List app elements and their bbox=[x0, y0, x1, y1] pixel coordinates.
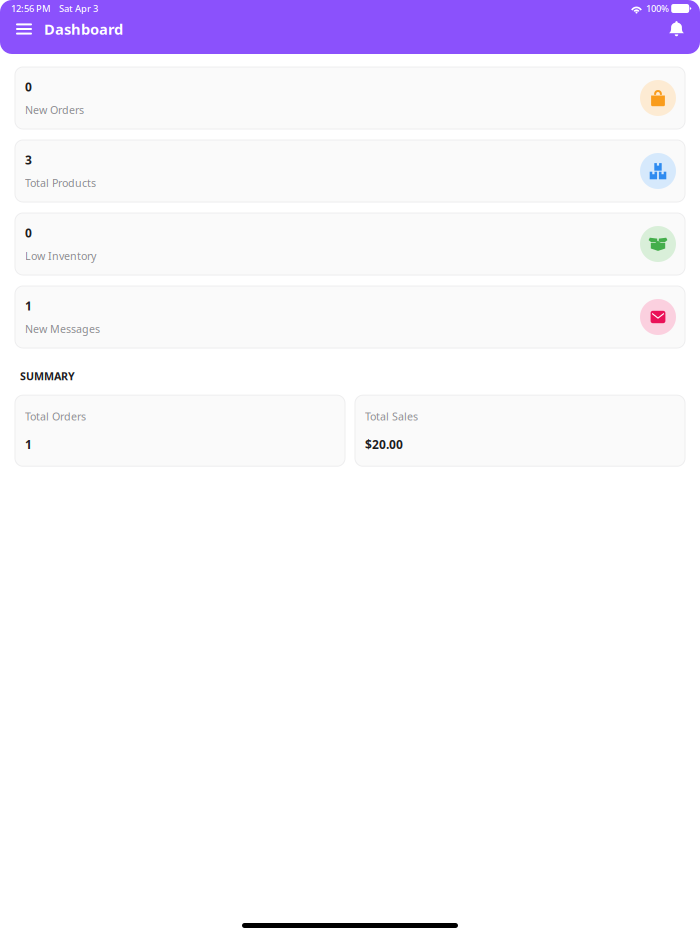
staticText: Total Orders bbox=[25, 409, 86, 423]
staticText: 3 bbox=[25, 152, 32, 168]
button[interactable]: 0 bbox=[15, 213, 685, 275]
staticText: Low Inventory bbox=[25, 249, 96, 263]
staticText: 0 bbox=[25, 79, 32, 95]
staticText: Total Products bbox=[25, 176, 96, 190]
button[interactable]: Menu bbox=[12, 18, 36, 39]
staticText: $20.00 bbox=[365, 436, 403, 452]
staticText: 100% bbox=[646, 2, 669, 15]
staticText: Total Sales bbox=[365, 409, 418, 423]
staticText: SUMMARY bbox=[20, 369, 75, 383]
button[interactable]: 3 bbox=[15, 140, 685, 202]
staticText: New Orders bbox=[25, 103, 84, 117]
button[interactable]: 1 bbox=[15, 286, 685, 348]
staticText: Dashboard bbox=[44, 19, 123, 39]
button[interactable]: Notifications bbox=[663, 17, 687, 41]
staticText: New Messages bbox=[25, 322, 100, 336]
staticText: 0 bbox=[25, 225, 32, 241]
staticText: 1 bbox=[25, 298, 32, 314]
staticText: Sat Apr 3 bbox=[59, 2, 98, 15]
button[interactable]: 0 bbox=[15, 67, 685, 129]
staticText: 12:56 PM bbox=[11, 2, 51, 15]
staticText: 1 bbox=[25, 436, 32, 452]
